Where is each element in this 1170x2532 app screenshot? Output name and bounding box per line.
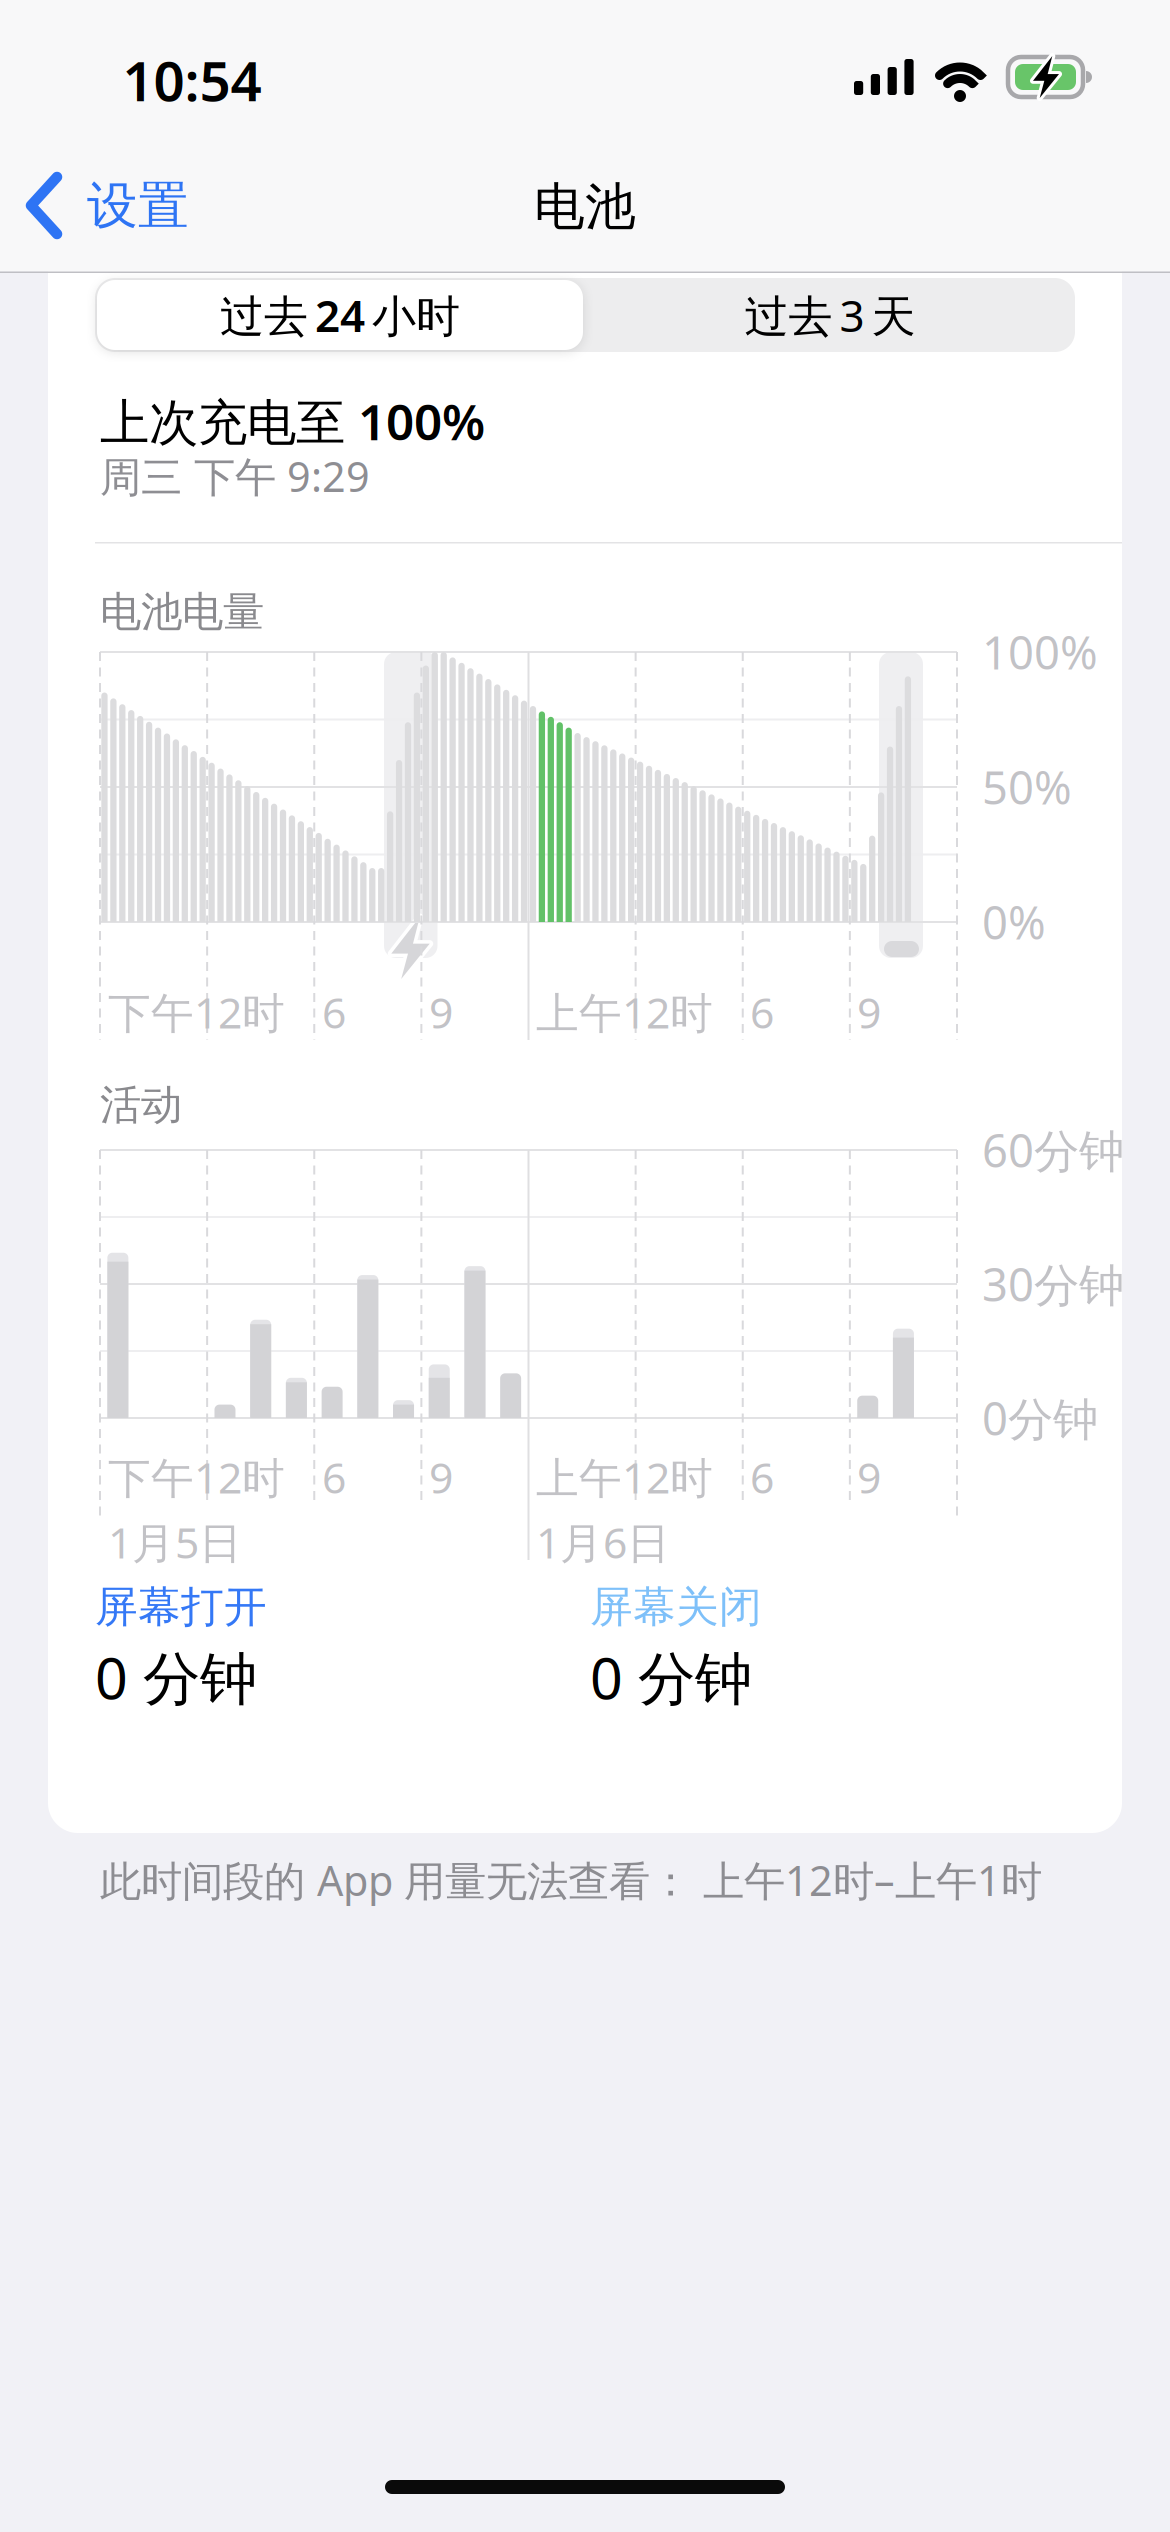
- staticText: 6: [750, 984, 774, 1040]
- staticText: 9: [429, 984, 453, 1040]
- staticText: 屏幕关闭: [590, 1581, 762, 1633]
- staticText: 上次充电至 100%: [100, 388, 485, 454]
- staticText: 10:54: [122, 44, 261, 116]
- staticText: 9: [857, 984, 881, 1040]
- staticText: 0%: [982, 892, 1046, 952]
- staticText: 0 分钟: [95, 1639, 257, 1715]
- staticText: 设置: [87, 175, 189, 237]
- staticText: 1月5日: [108, 1514, 242, 1570]
- staticText: 9: [857, 1449, 881, 1505]
- button[interactable]: 设置: [10, 156, 260, 256]
- staticText: 上午12时: [536, 1449, 713, 1505]
- staticText: 0分钟: [982, 1388, 1098, 1448]
- staticText: 电池: [534, 176, 636, 238]
- staticText: 过去 3 天: [744, 286, 915, 344]
- staticText: 100%: [982, 622, 1098, 682]
- staticText: 活动: [100, 1080, 182, 1130]
- staticText: 30分钟: [982, 1254, 1124, 1314]
- staticText: 60分钟: [982, 1120, 1124, 1180]
- staticText: 下午12时: [108, 1449, 285, 1505]
- staticText: 1月6日: [536, 1514, 670, 1570]
- staticText: 50%: [982, 757, 1072, 817]
- staticText: 周三 下午 9:29: [100, 449, 370, 503]
- staticText: 6: [322, 984, 346, 1040]
- staticText: 0 分钟: [590, 1639, 752, 1715]
- staticText: 屏幕打开: [95, 1581, 267, 1633]
- staticText: 此时间段的 App 用量无法查看： 上午12时–上午1时: [100, 1853, 1042, 1907]
- staticText: 下午12时: [108, 984, 285, 1040]
- button[interactable]: 过去 24 小时: [97, 280, 583, 350]
- button[interactable]: 过去 3 天: [587, 280, 1073, 350]
- staticText: 6: [322, 1449, 346, 1505]
- staticText: 电池电量: [100, 587, 264, 637]
- staticText: 9: [429, 1449, 453, 1505]
- staticText: 上午12时: [536, 984, 713, 1040]
- staticText: 过去 24 小时: [220, 286, 460, 344]
- staticText: 6: [750, 1449, 774, 1505]
